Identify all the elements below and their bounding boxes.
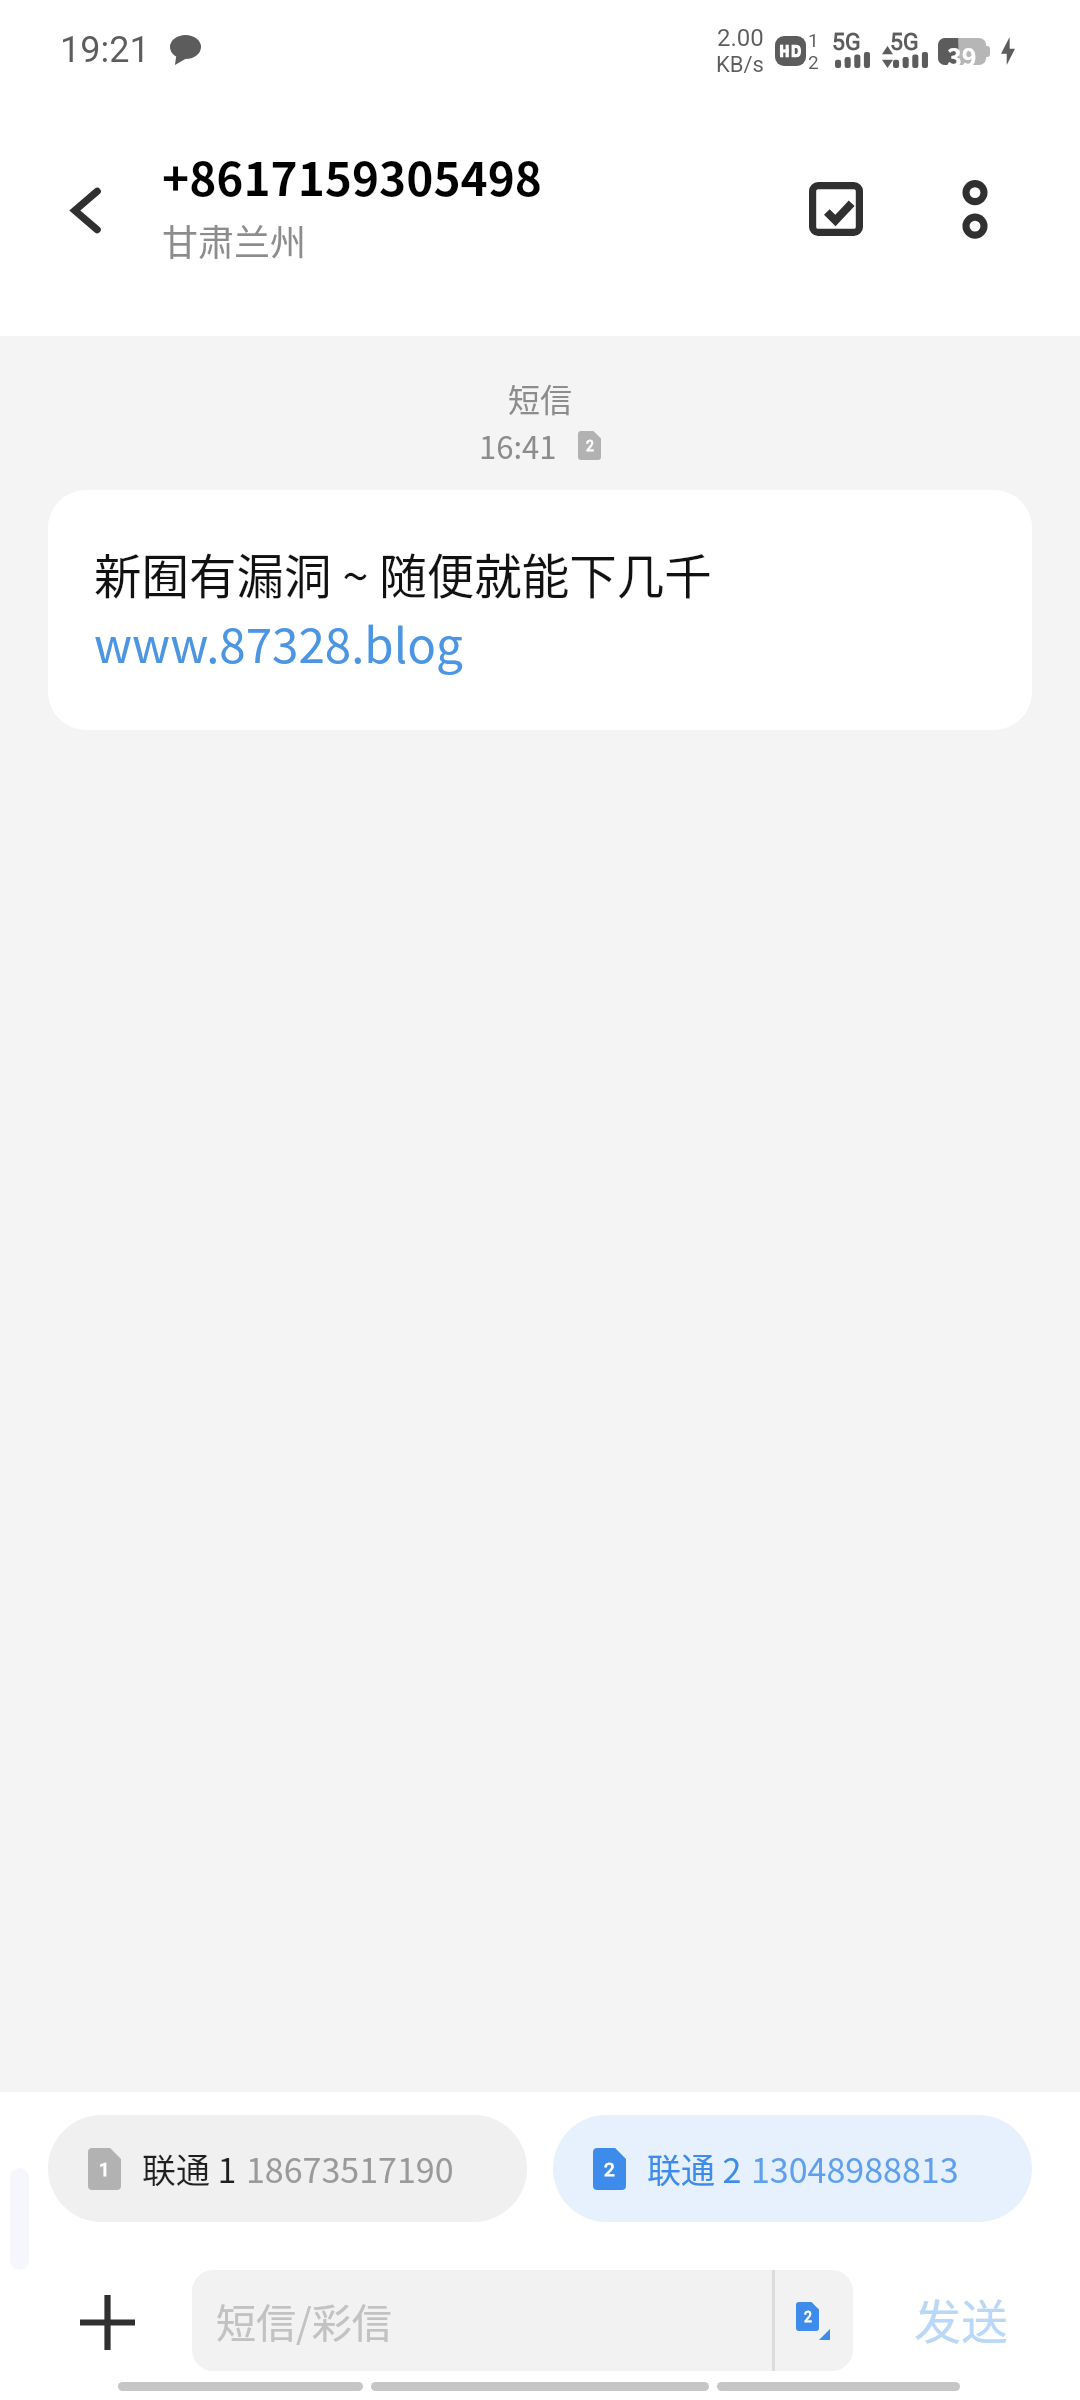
staticText: 新囿有漏洞 ~ 随便就能下几千	[94, 539, 712, 608]
staticText: 19:21	[60, 29, 150, 71]
button[interactable]: 2	[553, 2115, 1032, 2222]
staticText: 联通 2	[647, 2144, 742, 2193]
staticText: 2	[804, 2309, 812, 2325]
staticText: 5G	[890, 29, 919, 56]
staticText: 1	[808, 29, 819, 51]
staticText: 39	[947, 38, 977, 65]
staticText: www.87328.blog	[94, 608, 463, 677]
staticText: 短信/彩信	[216, 2292, 392, 2350]
button[interactable]: 短信/彩信	[192, 2270, 853, 2371]
button[interactable]: More options	[926, 160, 1024, 258]
staticText: 2	[586, 438, 594, 454]
staticText: 13048988813	[751, 2144, 959, 2193]
staticText: 甘肃兰州	[162, 214, 307, 266]
button[interactable]: Send	[888, 2275, 1033, 2360]
staticText: 2.00	[717, 24, 764, 52]
staticText: 联通 1	[142, 2144, 237, 2193]
button[interactable]: 1	[48, 2115, 527, 2222]
button[interactable]: Back	[40, 164, 132, 256]
staticText: KB/s	[716, 52, 764, 78]
staticText: 5G	[832, 29, 861, 56]
staticText: 16:41	[479, 423, 557, 468]
staticText: 发送	[914, 2284, 1008, 2352]
button[interactable]: 新囿有漏洞 ~ 随便就能下几千	[48, 490, 1032, 730]
staticText: +8617159305498	[162, 143, 542, 210]
staticText: 18673517190	[246, 2144, 454, 2193]
button[interactable]: Select messages	[787, 160, 885, 258]
staticText: 2	[808, 51, 819, 73]
staticText: 2	[604, 2158, 615, 2180]
button[interactable]: Add attachment	[61, 2276, 154, 2369]
staticText: 1	[99, 2158, 110, 2180]
staticText: 短信	[0, 375, 1080, 421]
button[interactable]: Select SIM	[796, 2302, 830, 2340]
